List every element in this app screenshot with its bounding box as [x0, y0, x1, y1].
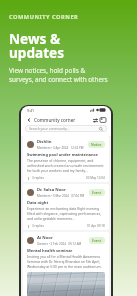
staticText: 3 replies — [32, 224, 44, 228]
staticText: Dr. Salsa Noor — [37, 187, 66, 193]
staticText: 01 Apr 09:18 — [87, 224, 105, 228]
staticText: The presence of chlorine, equipment, and… — [27, 158, 105, 173]
staticText: Members • 3 Apr 2024 12:32 PM — [37, 146, 84, 150]
staticText: Notice — [91, 142, 102, 147]
button[interactable]: Event — [89, 237, 105, 244]
staticText: 9:41 — [27, 108, 35, 113]
button[interactable]: Filter — [91, 116, 99, 124]
button[interactable]: Search your community... — [26, 126, 106, 131]
staticText: Event — [92, 190, 102, 195]
staticText: Swimming pool under maintenance — [27, 152, 98, 157]
staticText: Ai Noor — [37, 235, 53, 241]
button[interactable]: Post photo — [27, 272, 105, 296]
staticText: Dishlin — [37, 139, 52, 145]
button[interactable]: Notice — [88, 141, 105, 148]
staticText: 03 May 12:04 — [86, 176, 105, 180]
staticText: Members • 5 Mar 2024 07:04 PM — [37, 194, 85, 198]
staticText: Inviting you all for a Mental Health Awa… — [27, 254, 105, 269]
staticText: View notices, hold polls & surveys, and … — [9, 66, 108, 84]
staticText: Community corner — [34, 117, 76, 123]
staticText: Event — [92, 238, 102, 243]
staticText: Search your community... — [29, 126, 70, 131]
button[interactable]: Event — [89, 189, 105, 196]
button[interactable]: Back — [25, 116, 33, 124]
staticText: News & updates — [9, 29, 64, 62]
button[interactable]: Dishlin — [23, 136, 109, 182]
staticText: COMMUNITY CORNER — [9, 13, 79, 21]
button[interactable]: Ai Noor — [23, 232, 109, 296]
button[interactable]: Gallery — [99, 116, 107, 124]
staticText: Owners • 2 Feb 2024 05:12 AM — [37, 242, 82, 246]
staticText: 3 replies — [32, 176, 44, 180]
staticText: Data night — [27, 200, 49, 205]
staticText: Mental health seminar — [27, 248, 73, 253]
button[interactable]: Dr. Salsa Noor — [23, 184, 109, 230]
staticText: Experience an enchanting data flight eve… — [27, 206, 105, 221]
